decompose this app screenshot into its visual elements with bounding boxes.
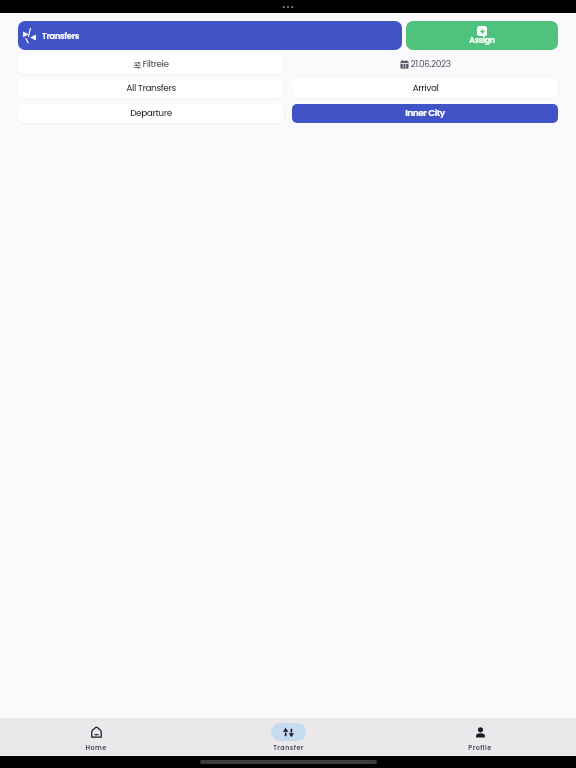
button[interactable]: Transfer: [192, 718, 384, 756]
button[interactable]: Arrival: [292, 78, 558, 98]
staticText: Arrival: [412, 82, 439, 95]
button[interactable]: Assign: [406, 21, 558, 50]
staticText: Filtreie: [142, 58, 169, 71]
staticText: 21.06.2023: [410, 58, 451, 71]
button[interactable]: Home: [0, 718, 192, 756]
button[interactable]: 21.06.2023: [292, 55, 558, 74]
staticText: Home: [85, 743, 107, 752]
button[interactable]: All Transfers: [18, 78, 284, 98]
button[interactable]: Profile: [384, 718, 576, 756]
staticText: Assign: [469, 35, 495, 46]
button[interactable]: Departure: [18, 104, 284, 123]
staticText: Profile: [468, 743, 492, 752]
button[interactable]: Inner City: [292, 104, 558, 123]
button[interactable]: Transfers: [18, 21, 402, 50]
staticText: Departure: [130, 107, 172, 120]
button[interactable]: Filtreie: [18, 55, 284, 74]
staticText: Inner City: [405, 107, 445, 120]
staticText: All Transfers: [126, 82, 176, 95]
staticText: Transfers: [42, 30, 79, 41]
staticText: Transfer: [273, 743, 304, 752]
